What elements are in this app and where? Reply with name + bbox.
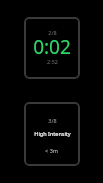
- staticText: 2/8: [48, 29, 57, 36]
- button[interactable]: 3/8: [24, 102, 80, 166]
- staticText: High Intensity: [34, 130, 71, 137]
- button[interactable]: 2/8: [24, 17, 80, 79]
- staticText: < 3m: [45, 147, 58, 154]
- staticText: 0:02: [33, 34, 71, 60]
- staticText: 3/8: [48, 117, 57, 124]
- staticText: 2:52: [47, 58, 58, 65]
